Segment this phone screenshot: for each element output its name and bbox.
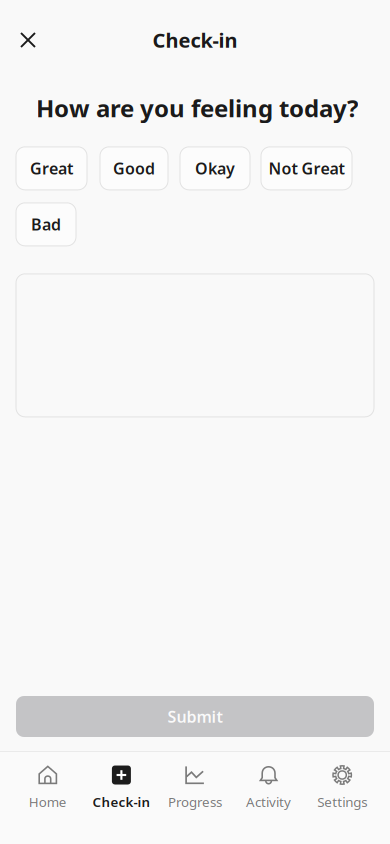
staticText: Submit [167, 706, 222, 727]
button[interactable]: Bad [16, 203, 76, 246]
button[interactable]: Home [11, 751, 85, 821]
staticText: Check-in [92, 793, 150, 811]
button[interactable]: Close [8, 20, 48, 60]
button[interactable]: Okay [180, 147, 250, 190]
staticText: Home [29, 793, 67, 811]
button[interactable]: Progress [158, 751, 232, 821]
staticText: Not Great [268, 158, 344, 179]
button[interactable]: Check-in [85, 751, 158, 821]
staticText: Good [113, 158, 155, 179]
button[interactable]: Not Great [261, 147, 352, 190]
button[interactable]: Submit [16, 696, 374, 737]
staticText: Activity [246, 793, 291, 811]
staticText: Great [30, 158, 73, 179]
button[interactable]: Settings [305, 751, 379, 821]
button[interactable]: Activity [232, 751, 305, 821]
staticText: Settings [317, 793, 367, 811]
button[interactable]: Good [100, 147, 168, 190]
staticText: How are you feeling today? [36, 92, 358, 124]
staticText: Progress [168, 793, 222, 811]
staticText: Check-in [152, 27, 237, 53]
staticText: Okay [195, 158, 235, 179]
staticText: Bad [31, 214, 61, 235]
button[interactable]: Great [16, 147, 87, 190]
